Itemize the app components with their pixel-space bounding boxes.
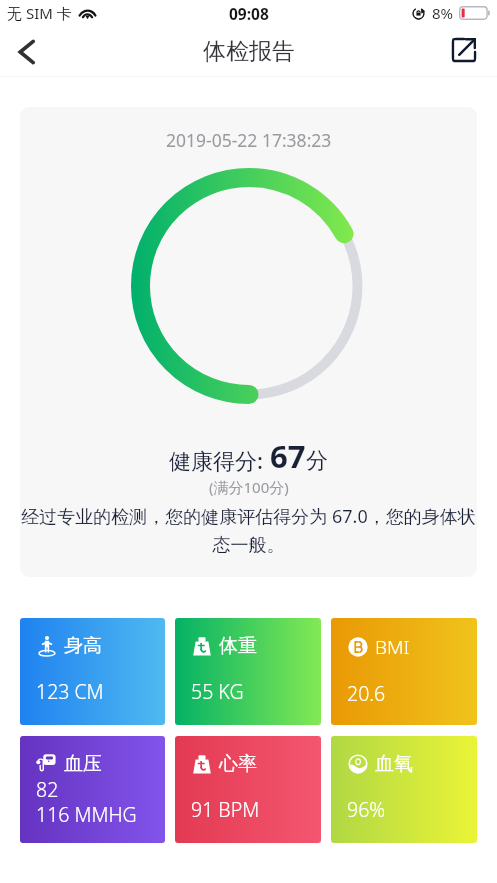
button[interactable]: Back xyxy=(4,28,52,76)
button[interactable]: 心率 xyxy=(175,736,321,843)
button[interactable]: 体重 xyxy=(175,618,321,725)
staticText: 分 xyxy=(306,447,328,475)
staticText: 血压 xyxy=(64,752,102,776)
staticText: 血氧 xyxy=(375,752,413,776)
staticText: 身高 xyxy=(64,634,102,658)
button[interactable]: 血压 xyxy=(20,736,165,843)
staticText: 20.6 xyxy=(347,680,386,707)
staticText: 55 KG xyxy=(191,678,244,705)
staticText: 经过专业的检测，您的健康评估得分为 67.0，您的身体状态一般。 xyxy=(20,504,477,556)
staticText: 91 BPM xyxy=(191,796,260,823)
staticText: 无 SIM 卡 xyxy=(7,3,72,23)
button[interactable]: BMI xyxy=(331,618,477,725)
button[interactable]: 血氧 xyxy=(331,736,477,843)
staticText: 8% xyxy=(432,3,454,23)
staticText: 健康得分: xyxy=(169,445,263,475)
staticText: BMI xyxy=(375,634,410,660)
staticText: 体检报告 xyxy=(203,37,295,66)
staticText: 96% xyxy=(347,796,386,823)
staticText: 67 xyxy=(270,435,306,477)
staticText: 心率 xyxy=(219,752,257,776)
staticText: 体重 xyxy=(219,634,257,658)
staticText: (满分100分) xyxy=(209,477,289,497)
staticText: 2019-05-22 17:38:23 xyxy=(166,128,332,152)
staticText: 123 CM xyxy=(36,678,104,705)
staticText: 82 116 MMHG xyxy=(36,776,137,828)
button[interactable]: 身高 xyxy=(20,618,165,725)
button[interactable]: Share xyxy=(442,28,486,72)
staticText: 09:08 xyxy=(229,3,269,24)
